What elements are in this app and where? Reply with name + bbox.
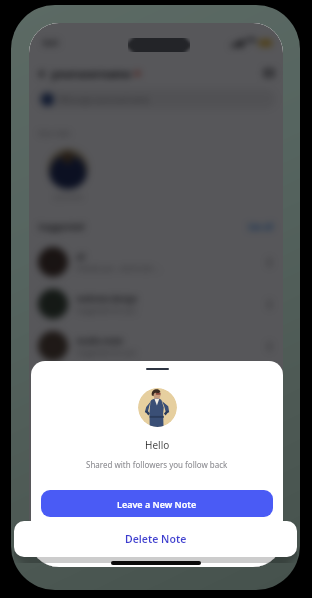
staticText: yourusername: [51, 66, 132, 81]
staticText: Delete Note: [125, 532, 187, 546]
staticText: Suggested: [38, 220, 85, 232]
button[interactable]: Leave a New Note: [41, 490, 273, 517]
staticText: mehmet.design: [76, 293, 138, 304]
button[interactable]: Delete Note: [14, 521, 297, 557]
staticText: Hello: [145, 438, 170, 452]
staticText: 9:41: [43, 37, 59, 48]
staticText: studio.mate: [76, 335, 123, 346]
staticText: See all: [248, 221, 274, 232]
staticText: Leave a New Note: [117, 498, 197, 510]
staticText: Shared with followers you follow back: [86, 459, 228, 470]
